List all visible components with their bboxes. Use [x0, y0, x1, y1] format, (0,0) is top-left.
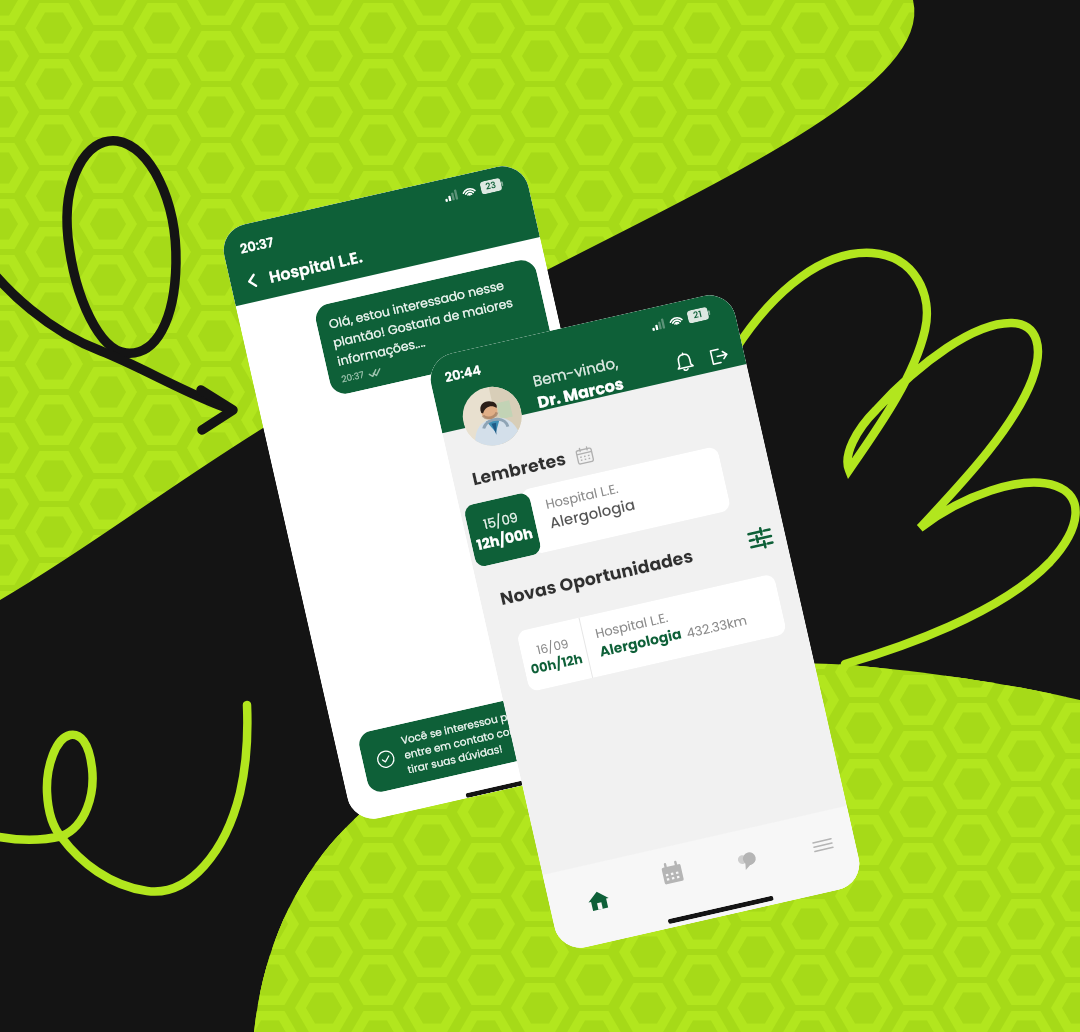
staticText: 432.33km [685, 611, 749, 642]
button[interactable]: Chat [727, 840, 768, 881]
staticText: Alergologia [547, 493, 638, 533]
button[interactable]: Calendar [652, 853, 693, 893]
staticText: 20:37 [238, 232, 276, 258]
staticText: Novas Oportunidades [498, 544, 695, 612]
staticText: Hospital L.E. [267, 245, 365, 288]
staticText: 23 [484, 179, 498, 194]
staticText: 21 [692, 308, 704, 322]
staticText: Você se interessou por esse plantão, ent… [399, 687, 613, 776]
staticText: 16/09 [535, 635, 571, 658]
staticText: Lembretes [470, 447, 569, 492]
button[interactable]: 15/09 [463, 492, 542, 568]
other: Back [240, 269, 264, 293]
button[interactable]: 16/09 [516, 573, 787, 692]
button[interactable]: Notifications [669, 346, 700, 377]
staticText: Dr. Marcos [535, 372, 626, 413]
button[interactable]: Back [240, 245, 365, 294]
staticText: Olá, estou interessado nesse plantão! Go… [327, 271, 536, 370]
staticText: 20:37 [340, 369, 366, 386]
staticText: 20:44 [443, 360, 483, 386]
button[interactable]: Filter [746, 524, 775, 553]
button[interactable]: Logout [702, 341, 734, 372]
staticText: Bem-vindo, [531, 352, 620, 392]
button[interactable]: Menu [803, 825, 843, 865]
staticText: Hospital L.E. [593, 608, 670, 642]
button[interactable]: Home [578, 880, 619, 921]
staticText: 12h/00h [475, 523, 535, 555]
button[interactable]: Você se interessou por esse plantão, ent… [356, 675, 629, 795]
staticText: Hospital L.E. [543, 479, 621, 513]
staticText: 00h/12h [529, 649, 584, 678]
staticText: Alergologia [597, 623, 684, 662]
button[interactable]: Olá, estou interessado nesse plantão! Go… [313, 257, 554, 397]
button[interactable]: Hospital L.E. [520, 446, 731, 555]
staticText: 15/09 [481, 508, 520, 533]
button[interactable]: Profile [457, 381, 527, 451]
